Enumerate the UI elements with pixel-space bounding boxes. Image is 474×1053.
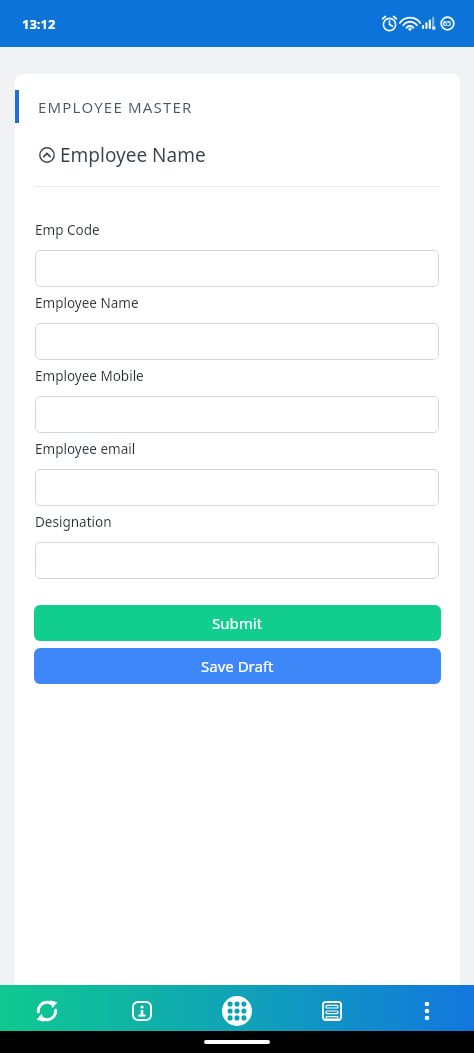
button[interactable] <box>189 985 284 1031</box>
button[interactable] <box>35 323 439 360</box>
staticText: Employee Mobile <box>35 367 144 385</box>
button[interactable] <box>35 469 439 506</box>
button[interactable] <box>94 985 189 1031</box>
button[interactable] <box>35 396 439 433</box>
staticText: Employee email <box>35 440 136 458</box>
staticText: 13:12 <box>22 15 56 33</box>
button[interactable] <box>284 985 379 1031</box>
staticText: Designation <box>35 513 112 531</box>
button[interactable] <box>0 985 94 1031</box>
staticText: Submit <box>212 613 263 633</box>
button[interactable]: Employee Name <box>39 142 460 168</box>
staticText: 65 <box>443 19 452 29</box>
button[interactable]: Save Draft <box>34 648 441 684</box>
button[interactable] <box>35 250 439 287</box>
staticText: Employee Name <box>60 142 206 168</box>
staticText: EMPLOYEE MASTER <box>38 97 193 117</box>
button[interactable] <box>379 985 474 1031</box>
staticText: Save Draft <box>201 656 274 676</box>
staticText: Emp Code <box>35 221 100 239</box>
button[interactable] <box>35 542 439 579</box>
staticText: Employee Name <box>35 294 139 312</box>
button[interactable]: Submit <box>34 605 441 641</box>
